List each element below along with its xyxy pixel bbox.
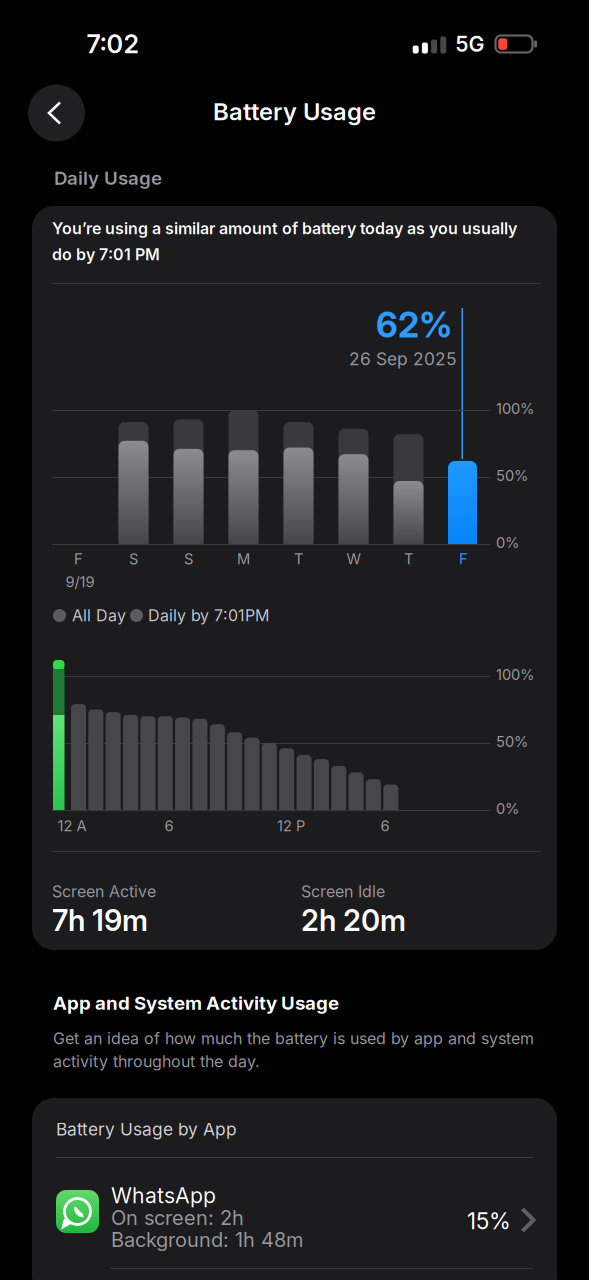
staticText: 50% xyxy=(496,467,528,484)
staticText: T xyxy=(294,550,303,568)
staticText: Background: 1h 48m xyxy=(111,1228,303,1252)
staticText: T xyxy=(404,550,413,568)
button[interactable]: WhatsApp xyxy=(52,1178,557,1266)
staticText: 12 A xyxy=(57,817,86,835)
staticText: Battery Usage by App xyxy=(56,1119,237,1139)
staticText: 6 xyxy=(164,817,173,835)
staticText: Battery Usage xyxy=(213,97,376,126)
staticText: 7:02 xyxy=(86,29,139,59)
staticText: W xyxy=(346,550,360,568)
staticText: F xyxy=(459,550,468,568)
staticText: 100% xyxy=(496,400,534,417)
staticText: 15% xyxy=(467,1208,511,1234)
staticText: 100% xyxy=(496,666,534,683)
staticText: 26 Sep 2025 xyxy=(349,349,457,369)
staticText: On screen: 2h xyxy=(111,1206,244,1230)
staticText: App and System Activity Usage xyxy=(53,992,339,1014)
staticText: 50% xyxy=(496,733,528,750)
staticText: Screen Active xyxy=(52,882,156,901)
button[interactable]: Back xyxy=(28,84,85,141)
staticText: 0% xyxy=(496,534,519,551)
staticText: 6 xyxy=(380,817,389,835)
staticText: 62% xyxy=(376,305,452,345)
staticText: F xyxy=(74,550,83,568)
staticText: You’re using a similar amount of battery… xyxy=(52,219,517,264)
staticText: S xyxy=(184,550,193,568)
staticText: S xyxy=(129,550,138,568)
staticText: Screen Idle xyxy=(301,882,385,901)
staticText: 9/19 xyxy=(65,573,94,591)
staticText: M xyxy=(237,550,250,568)
staticText: 2h 20m xyxy=(301,903,406,938)
staticText: 7h 19m xyxy=(52,903,148,938)
staticText: 12 P xyxy=(277,817,305,835)
staticText: All Day xyxy=(72,606,126,625)
staticText: 0% xyxy=(496,800,519,817)
staticText: Get an idea of how much the battery is u… xyxy=(53,1029,534,1071)
staticText: 5G xyxy=(455,31,484,57)
staticText: Daily by 7:01PM xyxy=(148,606,269,625)
staticText: Daily Usage xyxy=(54,167,162,189)
staticText: WhatsApp xyxy=(111,1183,216,1208)
